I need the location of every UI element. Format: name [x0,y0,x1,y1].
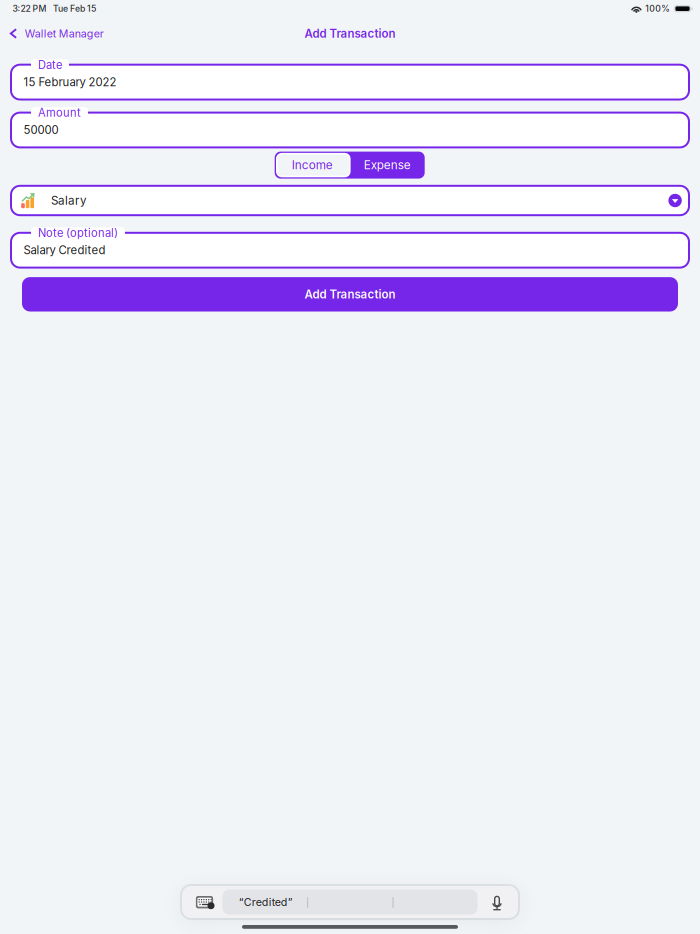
button[interactable]: Wallet Manager [0,21,114,46]
staticText: 100% [645,3,670,14]
staticText: Salary Credited [23,243,105,257]
button[interactable]: Keyboard options [186,886,222,918]
staticText: Date [38,58,62,72]
staticText: “Credited” [239,895,293,908]
staticText: Wallet Manager [25,27,104,40]
staticText: 15 February 2022 [23,75,116,89]
staticText: Income [292,158,333,172]
staticText: Note (optional) [38,226,118,240]
staticText: 3:22 PM [13,3,47,14]
staticText: Amount [38,106,81,119]
button[interactable]: Dictate [481,887,513,919]
button[interactable]: Expense [350,152,425,179]
staticText: 50000 [23,123,58,137]
button[interactable]: Add Transaction [22,277,678,311]
staticText: Add Transaction [304,287,395,301]
staticText: Add Transaction [304,27,395,40]
button[interactable]: Income [275,152,350,179]
staticText: Salary [51,193,87,207]
staticText: Expense [364,158,411,172]
staticText: Tue Feb 15 [53,3,96,14]
button[interactable]: Salary [11,186,689,215]
